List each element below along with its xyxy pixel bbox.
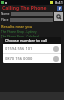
staticText: Name xyxy=(1,12,10,16)
staticText: The Phone Shop - Coleford xyxy=(1,35,39,39)
button[interactable]: Search xyxy=(54,12,63,21)
staticText: 8:41 xyxy=(55,0,63,5)
staticText: f xyxy=(59,6,61,11)
button[interactable]: 0870 156 0000 xyxy=(3,54,61,63)
staticText: Place xyxy=(1,18,9,22)
staticText: Calling The Phone xyxy=(2,5,47,11)
button[interactable]: Facebook xyxy=(57,6,62,11)
staticText: Results near you xyxy=(1,24,33,29)
button[interactable]: 01594 556 101 xyxy=(3,44,61,53)
staticText: Choose number to call xyxy=(5,38,48,43)
staticText: 01594 556 101 xyxy=(5,46,33,51)
staticText: The Phone Shop - Lydney xyxy=(1,30,37,34)
staticText: 0870 156 0000 xyxy=(5,56,33,61)
